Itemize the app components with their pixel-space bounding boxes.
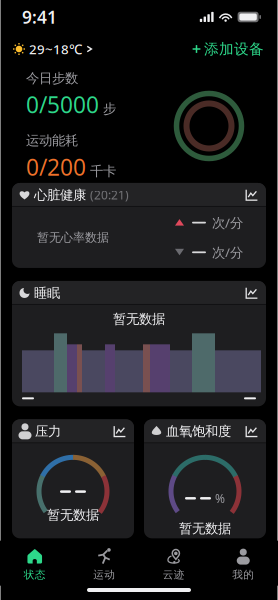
staticText: 0/5000	[26, 89, 99, 119]
button[interactable]: 我的	[208, 539, 278, 587]
button[interactable]: View chart	[245, 425, 259, 437]
staticText: 千卡	[90, 163, 116, 179]
button[interactable]: 云迹	[139, 539, 208, 587]
staticText: 压力	[35, 423, 61, 439]
staticText: 暂无数据	[179, 520, 231, 537]
staticText: 睡眠	[34, 285, 60, 301]
staticText: (20:21)	[90, 187, 129, 203]
staticText: 次/分	[212, 214, 243, 231]
button[interactable]: 添加设备	[192, 35, 264, 63]
staticText: 步	[103, 101, 116, 117]
staticText: 暂无数据	[47, 507, 99, 523]
staticText: 运动能耗	[26, 132, 78, 149]
staticText: 暂无心率数据	[37, 230, 109, 245]
staticText: 29~18℃	[29, 40, 82, 58]
staticText: 状态	[24, 568, 46, 581]
button[interactable]: View chart	[113, 425, 127, 437]
staticText: 血氧饱和度	[166, 423, 231, 439]
staticText: 9:41	[22, 5, 57, 28]
staticText: %	[215, 490, 225, 506]
staticText: 我的	[232, 568, 254, 581]
button[interactable]: 29~18℃	[13, 35, 93, 63]
staticText: 添加设备	[204, 40, 264, 58]
button[interactable]: View chart	[245, 287, 259, 299]
button[interactable]: 运动	[69, 539, 139, 587]
staticText: 运动	[93, 568, 115, 581]
staticText: 今日步数	[26, 70, 78, 86]
staticText: 次/分	[212, 243, 243, 261]
staticText: 云迹	[163, 568, 185, 581]
button[interactable]: View chart	[245, 189, 259, 201]
button[interactable]: 状态	[0, 539, 69, 587]
staticText: 心脏健康	[34, 187, 86, 203]
staticText: 0/200	[26, 152, 86, 182]
staticText: 暂无数据	[113, 311, 165, 327]
